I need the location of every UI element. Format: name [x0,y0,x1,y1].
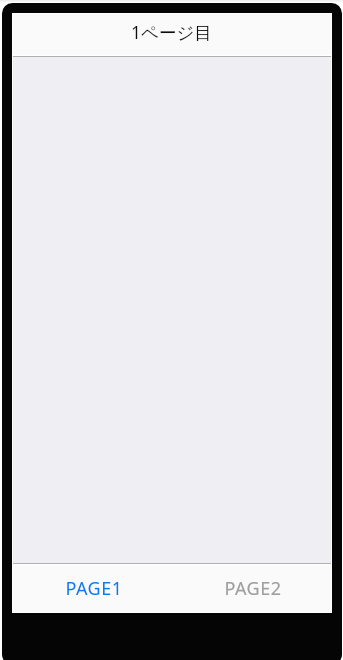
staticText: 1ページ目 [131,20,212,44]
button[interactable]: PAGE1 [13,565,172,612]
staticText: PAGE2 [224,576,282,601]
staticText: PAGE1 [65,576,123,601]
button[interactable]: PAGE2 [172,565,331,612]
